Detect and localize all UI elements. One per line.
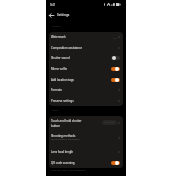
staticText: Take video: [104, 121, 115, 124]
button[interactable]: Preserve settings: [49, 95, 123, 106]
button[interactable]: Watermark: [49, 32, 123, 42]
staticText: Lens focal length: [51, 150, 74, 154]
staticText: General: [52, 25, 61, 28]
staticText: More: [52, 109, 58, 112]
staticText: Scan QR codes in the viewfinder: [51, 169, 121, 172]
button[interactable]: Shooting methods: [49, 129, 123, 146]
staticText: QR code scanning: [51, 161, 75, 165]
staticText: Preserve settings: [51, 99, 74, 103]
button[interactable]: Toggle: [111, 161, 120, 165]
button[interactable]: Mirror selfie: [49, 63, 123, 74]
staticText: Shooting methods: [51, 134, 76, 138]
staticText: Shutter sound: [51, 56, 70, 60]
staticText: Touch and hold shutter button: [51, 119, 82, 127]
staticText: Watermark: [51, 35, 66, 39]
button[interactable]: Back: [47, 11, 55, 19]
staticText: Settings: [57, 13, 70, 17]
button[interactable]: QR code scanning: [49, 157, 123, 168]
button[interactable]: Lens focal length: [49, 146, 123, 157]
button[interactable]: Touch and hold shutter button: [49, 116, 123, 129]
button[interactable]: Toggle: [111, 67, 120, 71]
button[interactable]: Formats: [49, 85, 123, 95]
button[interactable]: Toggle: [111, 56, 120, 60]
button[interactable]: Toggle: [111, 78, 120, 82]
staticText: Tap to capture, Show palm: [51, 138, 80, 141]
staticText: Mirror selfie: [51, 67, 67, 71]
button[interactable]: Shutter sound: [49, 53, 123, 63]
staticText: Off: [113, 36, 117, 39]
staticText: Formats: [51, 88, 62, 92]
staticText: 9:41: [50, 3, 56, 7]
button[interactable]: Composition assistance: [49, 42, 123, 53]
button[interactable]: Add location tags: [49, 74, 123, 85]
staticText: Composition assistance: [51, 46, 82, 50]
staticText: Add location tags: [51, 78, 74, 82]
